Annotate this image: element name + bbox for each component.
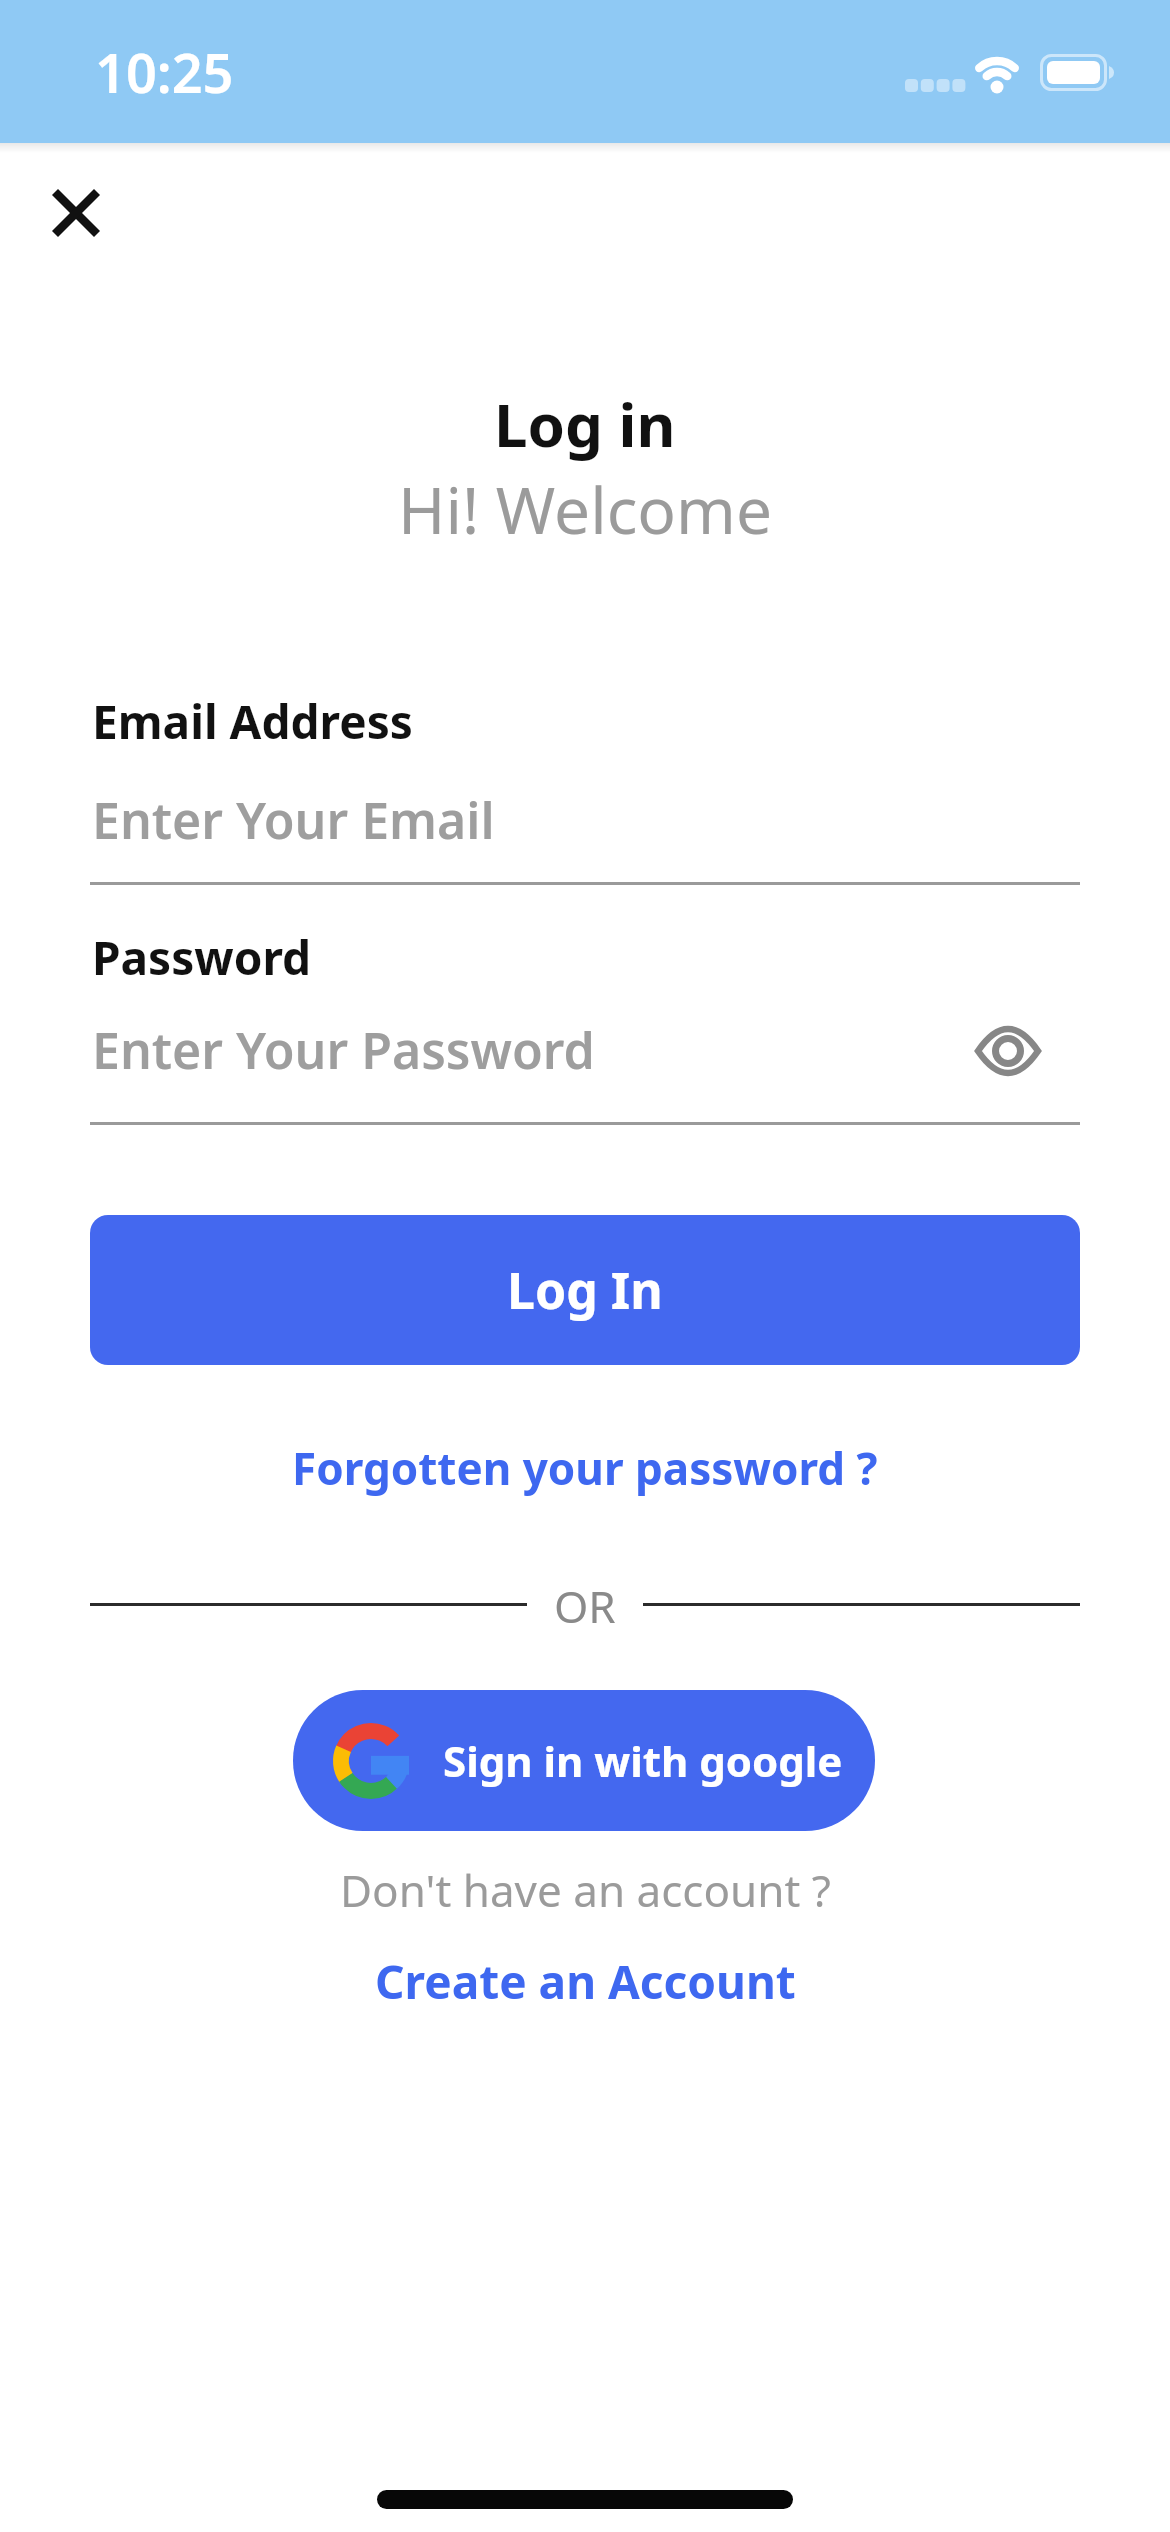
staticText: Forgotten your password ? [292,1438,878,1498]
button[interactable]: Forgotten your password ? [292,1438,878,1498]
button[interactable]: Create an Account [375,1950,796,2013]
staticText: OR [554,1576,616,1636]
staticText: Create an Account [375,1950,796,2013]
staticText: Email Address [92,690,413,753]
button[interactable] [975,1029,1041,1073]
staticText: Don't have an account ? [340,1860,831,1920]
staticText: Enter Your Password [92,1016,595,1084]
button[interactable] [38,175,113,250]
staticText: Log In [507,1256,663,1324]
staticText: Enter Your Email [92,786,495,854]
staticText: Log in [494,383,676,465]
staticText: Password [92,926,312,989]
staticText: 10:25 [95,35,234,109]
button[interactable]: Log In [90,1215,1080,1365]
staticText: Hi! Welcome [398,466,773,553]
staticText: Sign in with google [443,1732,843,1789]
button[interactable]: Sign in with google [293,1690,875,1831]
